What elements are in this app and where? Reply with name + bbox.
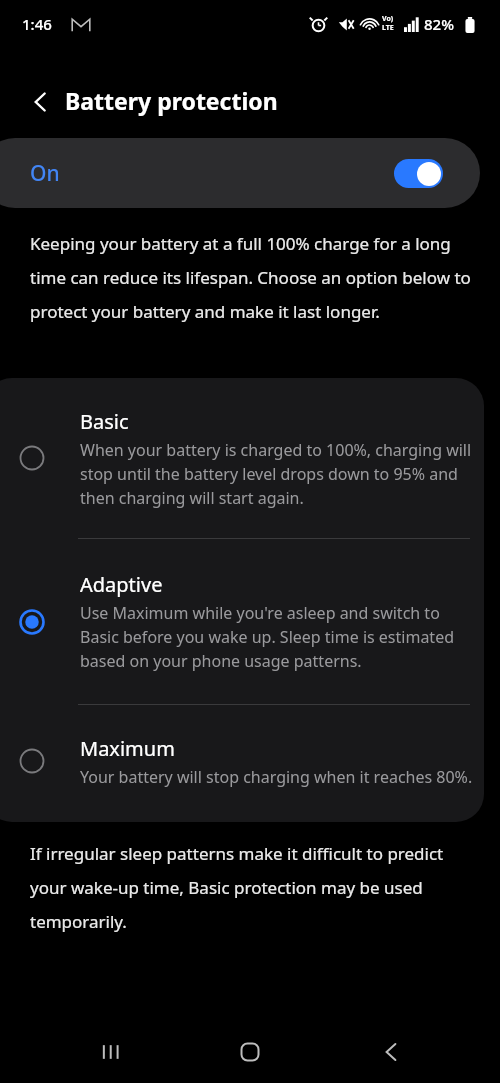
button[interactable]: Home xyxy=(218,1032,282,1072)
staticText: Basic xyxy=(80,408,129,435)
staticText: 1:46 xyxy=(22,14,52,34)
staticText: When your battery is charged to 100%, ch… xyxy=(80,439,480,509)
staticText: Use Maximum while you're asleep and swit… xyxy=(80,602,480,672)
staticText: Your battery will stop charging when it … xyxy=(80,766,473,788)
staticText: Battery protection xyxy=(65,85,278,116)
staticText: Adaptive xyxy=(80,571,163,598)
staticText: 82% xyxy=(424,14,454,34)
staticText: Keeping your battery at a full 100% char… xyxy=(30,232,475,323)
button[interactable]: Back xyxy=(358,1032,422,1072)
staticText: Vo) xyxy=(382,14,394,24)
staticText: Maximum xyxy=(80,735,175,762)
staticText: On xyxy=(30,159,60,188)
button[interactable]: Adaptive xyxy=(0,539,484,704)
button[interactable]: On xyxy=(0,138,480,208)
staticText: LTE xyxy=(382,23,394,33)
button[interactable]: Back xyxy=(18,80,62,124)
button[interactable]: Basic xyxy=(0,378,484,538)
button[interactable]: Maximum xyxy=(0,705,484,817)
button[interactable]: Recent apps xyxy=(78,1032,142,1072)
staticText: If irregular sleep patterns make it diff… xyxy=(30,842,478,933)
